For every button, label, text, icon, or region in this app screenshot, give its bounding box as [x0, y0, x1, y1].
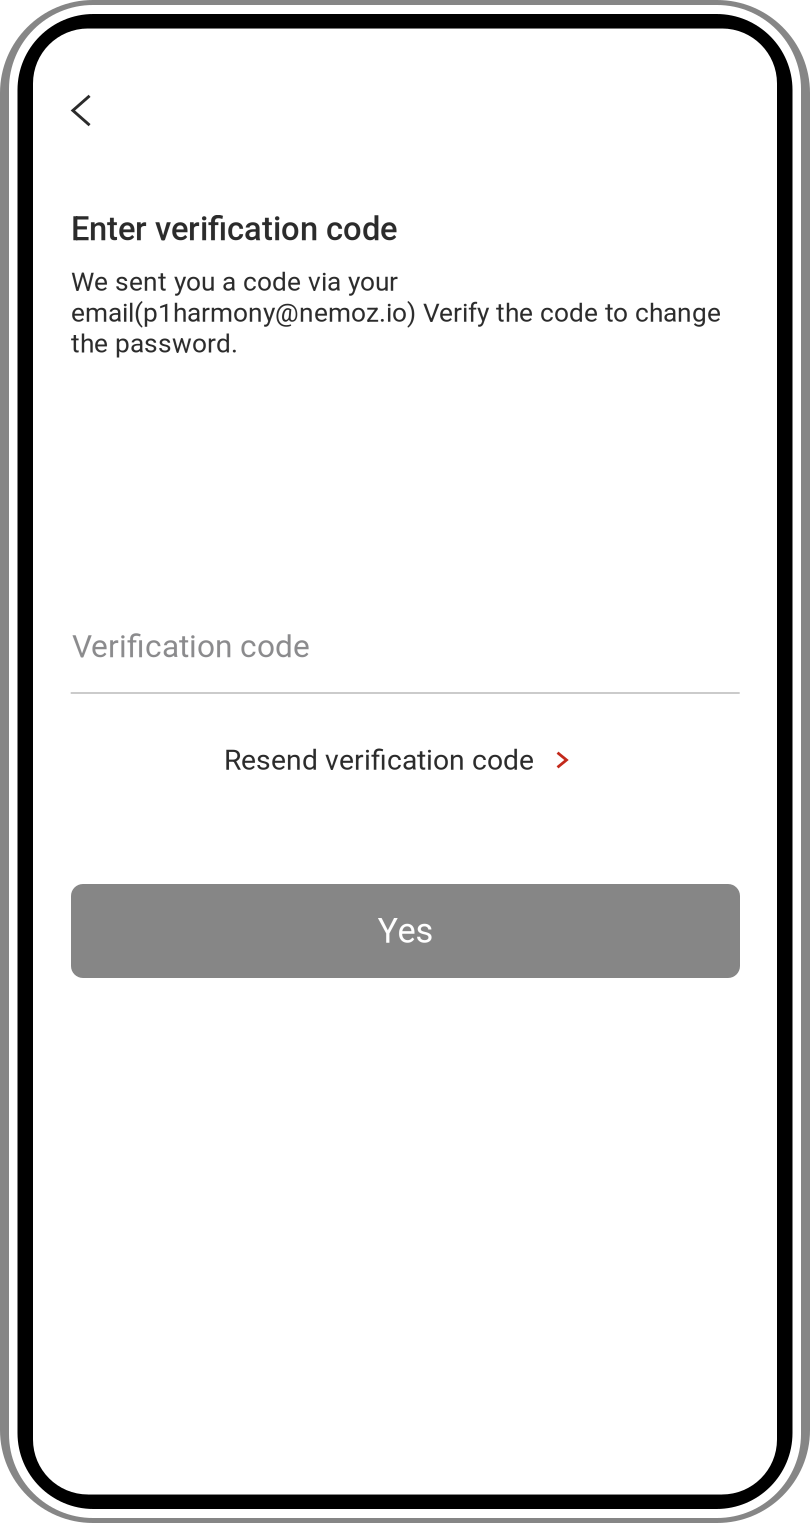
staticText: We sent you a code via your email(p1harm… [71, 266, 721, 359]
staticText: Resend verification code [224, 743, 534, 776]
staticText: Verification code [72, 628, 310, 665]
staticText: Enter verification code [71, 210, 397, 248]
button[interactable]: Yes [71, 884, 740, 978]
staticText: Yes [377, 911, 433, 951]
button[interactable]: Back [50, 79, 112, 141]
button[interactable]: Resend verification code [224, 729, 584, 791]
